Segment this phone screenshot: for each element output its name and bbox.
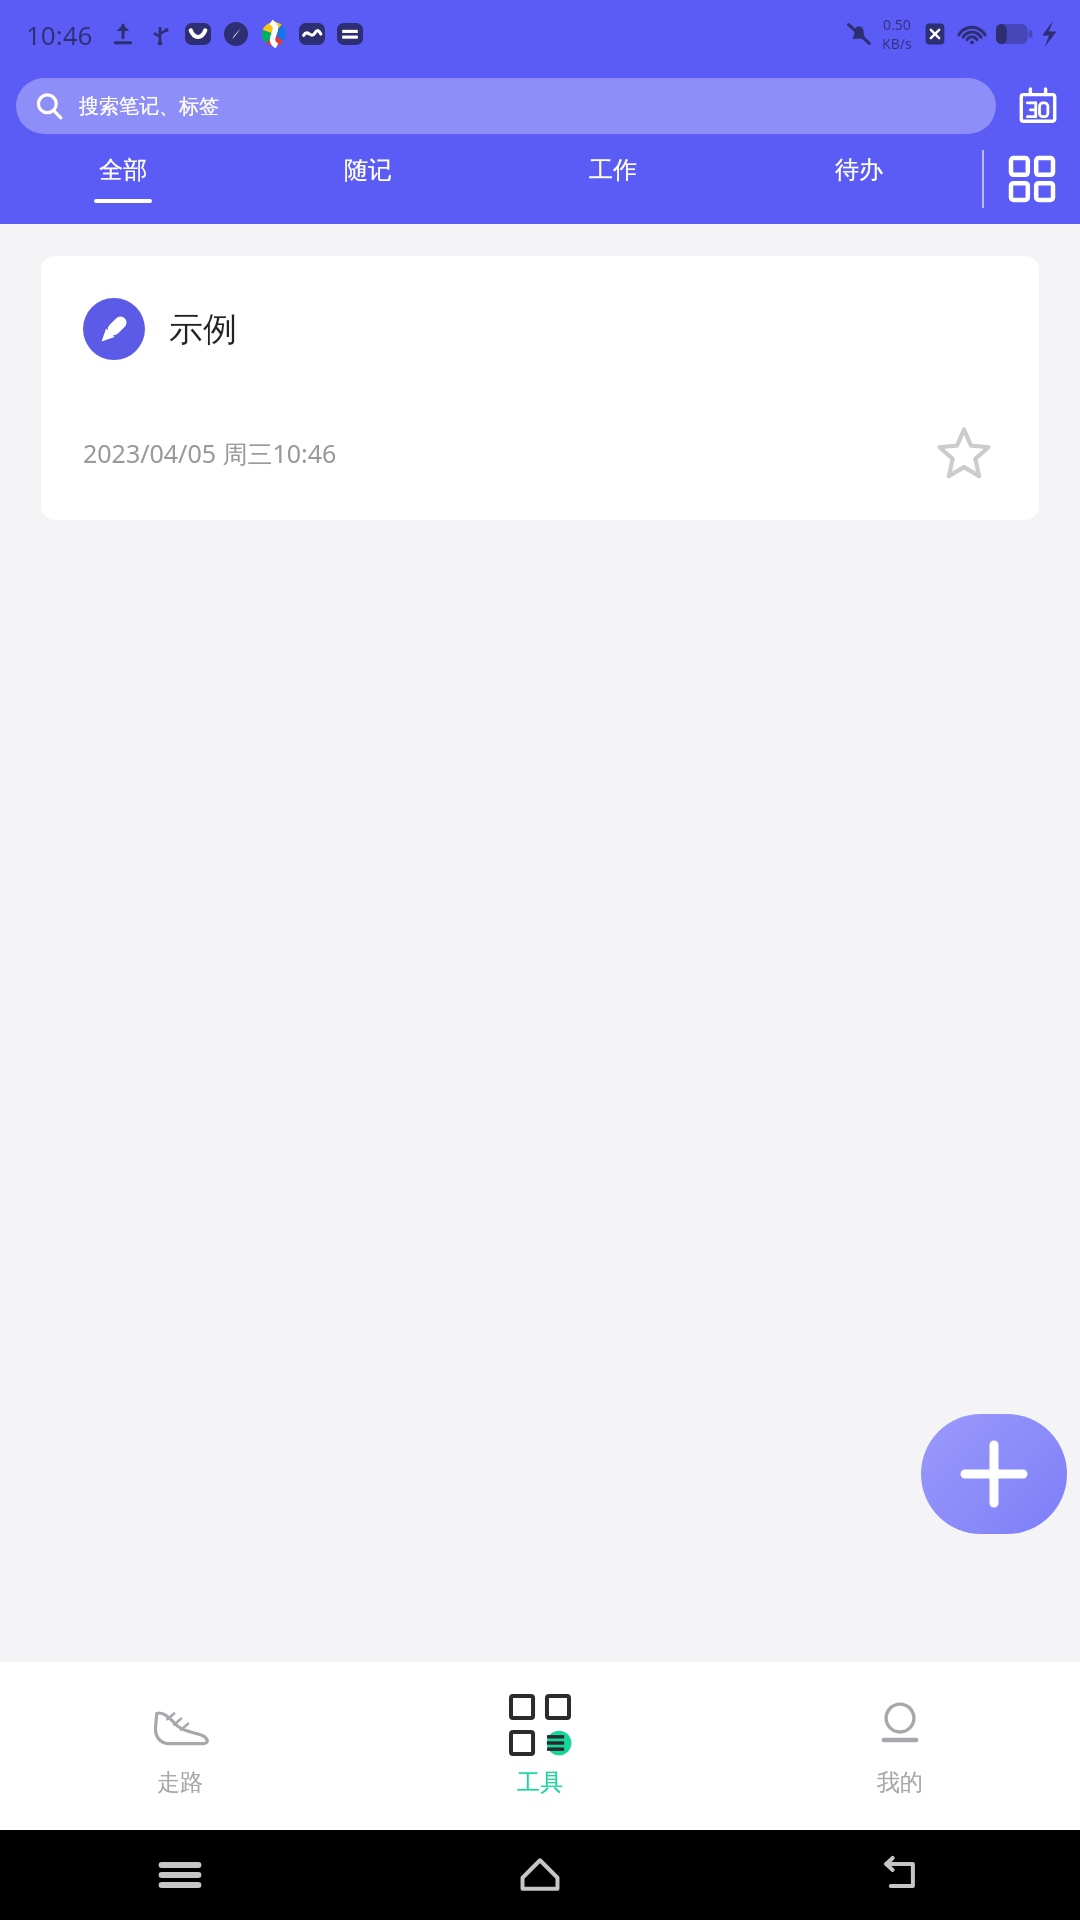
button[interactable]: Back — [720, 1830, 1080, 1920]
button[interactable]: 工具 — [360, 1662, 720, 1830]
button[interactable]: 全部 — [0, 134, 245, 224]
button[interactable]: Recents — [0, 1830, 360, 1920]
staticText: KB/s — [882, 34, 912, 53]
button[interactable]: 随记 — [245, 134, 490, 224]
button[interactable]: 我的 — [720, 1662, 1080, 1830]
staticText: 随记 — [344, 155, 392, 185]
staticText: 2023/04/05 周三10:46 — [83, 436, 337, 470]
button[interactable]: 走路 — [0, 1662, 360, 1830]
button[interactable]: Grid view — [984, 134, 1080, 224]
staticText: 0.50 — [883, 15, 911, 34]
staticText: 示例 — [169, 308, 237, 351]
staticText: 走路 — [157, 1768, 203, 1797]
staticText: 工作 — [589, 155, 637, 185]
button[interactable]: Calendar — [1012, 80, 1064, 132]
button[interactable]: 待办 — [736, 134, 982, 224]
button[interactable]: 工作 — [490, 134, 736, 224]
button[interactable]: Home — [360, 1830, 720, 1920]
button[interactable]: Favorite — [931, 420, 997, 486]
staticText: 10:46 — [26, 17, 93, 52]
staticText: 搜索笔记、标签 — [79, 94, 219, 119]
staticText: 我的 — [877, 1768, 923, 1797]
button[interactable]: 搜索笔记、标签 — [16, 78, 996, 134]
button[interactable]: 示例 — [41, 256, 1039, 520]
staticText: 工具 — [517, 1768, 563, 1797]
button[interactable]: Add note — [921, 1414, 1067, 1534]
staticText: 待办 — [835, 155, 883, 185]
staticText: 全部 — [99, 155, 147, 185]
